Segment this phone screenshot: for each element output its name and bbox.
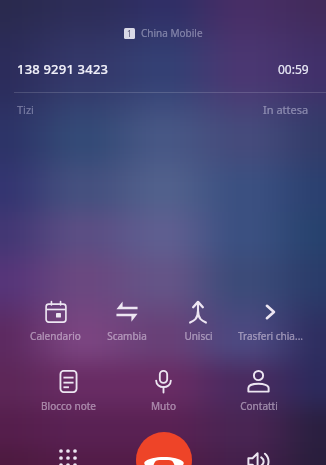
staticText: Trasferi chia... <box>238 329 303 343</box>
staticText: Unisci <box>184 329 213 343</box>
staticText: 00:59 <box>278 61 309 77</box>
staticText: Blocco note <box>41 399 96 413</box>
button[interactable]: Dialpad <box>20 432 116 465</box>
staticText: Scambia <box>107 329 147 343</box>
staticText: In attesa <box>263 102 309 117</box>
button[interactable]: Blocco note <box>20 370 116 413</box>
button[interactable]: Muto <box>116 370 211 413</box>
button[interactable]: Scambia <box>91 301 162 343</box>
button[interactable]: Unisci <box>162 301 234 343</box>
staticText: 1 <box>127 28 132 39</box>
button[interactable]: Trasferi chia... <box>234 301 306 343</box>
staticText: Calendario <box>30 329 81 343</box>
button[interactable]: Calendario <box>20 301 91 343</box>
staticText: Tizi <box>17 102 34 117</box>
button[interactable]: Contatti <box>211 370 306 413</box>
staticText: China Mobile <box>141 26 203 40</box>
staticText: Contatti <box>240 399 278 413</box>
staticText: 138 9291 3423 <box>17 60 109 78</box>
button[interactable]: Speaker <box>211 432 306 465</box>
staticText: Muto <box>151 399 176 413</box>
button[interactable]: End call <box>136 432 192 465</box>
